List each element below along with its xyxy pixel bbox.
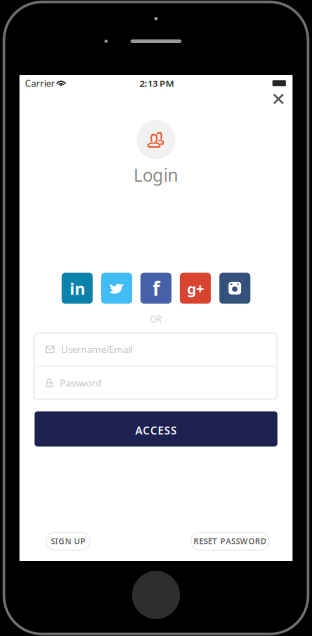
- staticText: in: [70, 278, 85, 299]
- staticText: Username/Email: [61, 343, 132, 356]
- staticText: Login: [133, 163, 178, 186]
- button[interactable]: Sign in with Twitter: [101, 273, 132, 304]
- staticText: g+: [187, 279, 204, 298]
- staticText: SIGN UP: [51, 536, 85, 546]
- button[interactable]: Sign in with Instagram: [219, 273, 250, 304]
- button[interactable]: Sign in with Facebook: [140, 273, 171, 304]
- staticText: 2:13 PM: [139, 77, 174, 89]
- button[interactable]: Sign in with Google: [180, 273, 211, 304]
- staticText: ACCESS: [135, 423, 177, 438]
- staticText: Password: [60, 377, 102, 389]
- staticText: RESET PASSWORD: [194, 536, 266, 546]
- staticText: OR: [150, 314, 161, 325]
- staticText: f: [152, 276, 159, 301]
- staticText: Carrier: [25, 77, 55, 89]
- button[interactable]: Sign in with LinkedIn: [62, 273, 93, 304]
- button[interactable]: Close: [269, 89, 288, 108]
- button[interactable]: ACCESS: [34, 411, 277, 446]
- button[interactable]: RESET PASSWORD: [191, 532, 269, 550]
- button[interactable]: SIGN UP: [46, 532, 90, 550]
